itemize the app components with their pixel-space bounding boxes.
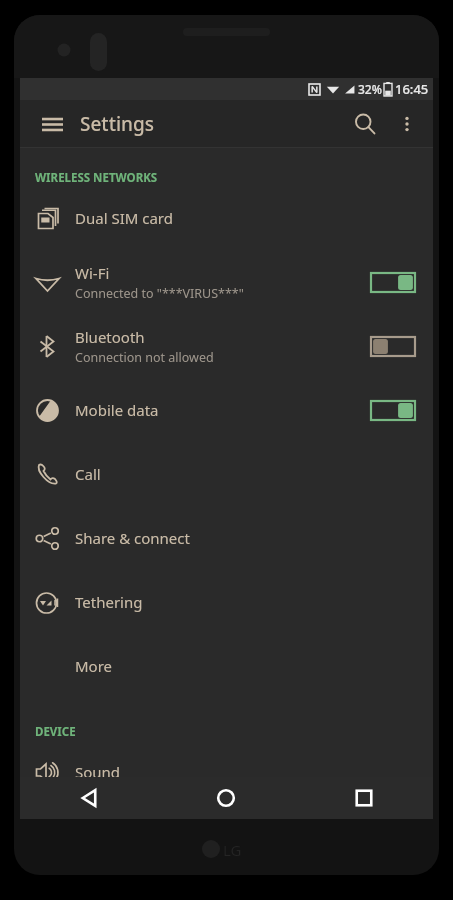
- button[interactable]: Home: [157, 777, 295, 819]
- staticText: Tethering: [75, 592, 143, 612]
- staticText: Share & connect: [75, 528, 190, 548]
- button[interactable]: More options: [387, 104, 427, 144]
- staticText: WIRELESS NETWORKS: [35, 170, 158, 186]
- staticText: Call: [75, 464, 101, 484]
- staticText: Connection not allowed: [75, 349, 214, 366]
- staticText: Bluetooth: [75, 327, 145, 347]
- staticText: Settings: [80, 111, 154, 137]
- button[interactable]: Open navigation menu: [32, 104, 72, 144]
- button[interactable]: Bluetooth: [20, 314, 433, 378]
- button[interactable]: Search: [343, 102, 387, 146]
- button[interactable]: Wi-Fi: [20, 250, 433, 314]
- button[interactable]: Recents: [295, 777, 433, 819]
- button[interactable]: Back: [20, 777, 157, 819]
- button[interactable]: Dual SIM card: [20, 186, 433, 250]
- button[interactable]: Call: [20, 442, 433, 506]
- button[interactable]: Toggle on: [371, 273, 415, 292]
- staticText: Connected to "***VIRUS***": [75, 285, 244, 302]
- staticText: Mobile data: [75, 400, 159, 420]
- staticText: DEVICE: [35, 724, 76, 740]
- staticText: More: [75, 656, 113, 676]
- staticText: 32%: [358, 81, 382, 97]
- button[interactable]: Tethering: [20, 570, 433, 634]
- button[interactable]: Toggle on: [371, 401, 415, 420]
- staticText: 16:45: [395, 80, 429, 98]
- staticText: LG: [223, 840, 242, 860]
- button[interactable]: Sound: [20, 740, 433, 804]
- button[interactable]: More: [20, 634, 433, 698]
- staticText: Wi-Fi: [75, 263, 110, 283]
- staticText: Sound: [75, 762, 121, 782]
- button[interactable]: Mobile data: [20, 378, 433, 442]
- button[interactable]: Share & connect: [20, 506, 433, 570]
- staticText: Dual SIM card: [75, 208, 173, 228]
- button[interactable]: Toggle off: [371, 337, 415, 356]
